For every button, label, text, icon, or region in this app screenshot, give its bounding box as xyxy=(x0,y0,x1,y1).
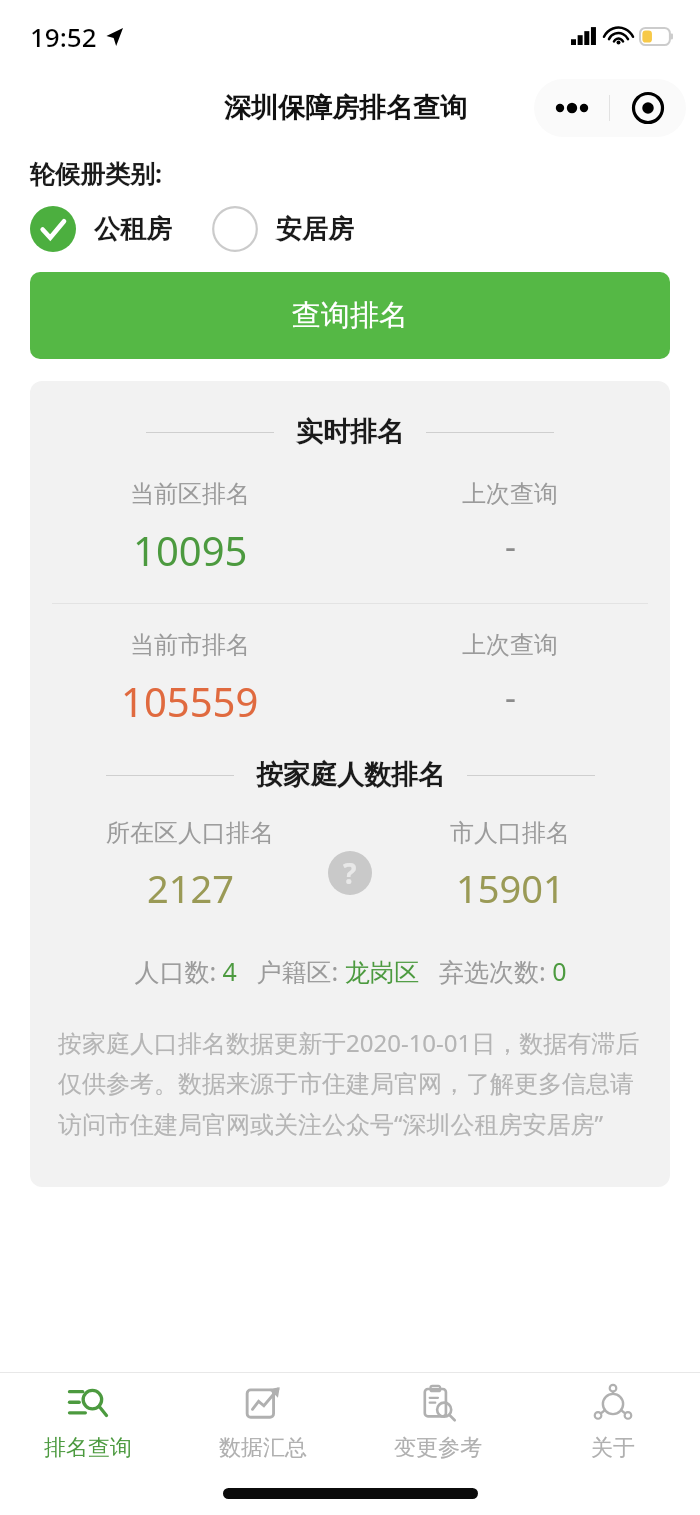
staticText: 上次查询 xyxy=(462,630,558,660)
staticText: 按家庭人口排名数据更新于2020-10-01日，数据有滞后仅供参考。数据来源于市… xyxy=(58,1026,642,1141)
staticText: 人口数: 4 户籍区: 龙岗区 弃选次数: 0 xyxy=(134,954,567,988)
staticText: 数据汇总 xyxy=(219,1434,307,1462)
staticText: 上次查询 xyxy=(462,479,558,509)
button[interactable]: Help xyxy=(328,851,372,895)
staticText: 轮候册类别: xyxy=(30,156,163,190)
staticText: 2127 xyxy=(147,862,234,914)
staticText: - xyxy=(505,523,516,569)
staticText: 排名查询 xyxy=(44,1434,132,1462)
staticText: 关于 xyxy=(591,1434,635,1462)
staticText: 10095 xyxy=(133,523,248,577)
button[interactable]: Close xyxy=(610,79,686,137)
staticText: 查询排名 xyxy=(292,297,408,334)
staticText: 当前区排名 xyxy=(130,479,250,509)
button[interactable]: 查询排名 xyxy=(30,272,670,359)
button[interactable]: 排名查询 xyxy=(0,1382,175,1462)
staticText: 15901 xyxy=(456,862,565,914)
staticText: - xyxy=(505,674,516,720)
staticText: 19:52 xyxy=(30,19,97,54)
staticText: 深圳保障房排名查询 xyxy=(224,91,467,125)
staticText: 市人口排名 xyxy=(450,818,570,848)
button[interactable]: 变更参考 xyxy=(350,1382,525,1462)
button[interactable]: 关于 xyxy=(525,1382,700,1462)
button[interactable]: 公租房 xyxy=(30,206,172,252)
staticText: ? xyxy=(343,854,357,892)
staticText: 实时排名 xyxy=(296,415,404,449)
staticText: 所在区人口排名 xyxy=(106,818,274,848)
staticText: 当前市排名 xyxy=(130,630,250,660)
staticText: 变更参考 xyxy=(394,1434,482,1462)
button[interactable]: 数据汇总 xyxy=(175,1382,350,1462)
staticText: 公租房 xyxy=(94,213,172,246)
staticText: 105559 xyxy=(121,674,259,728)
staticText: 按家庭人数排名 xyxy=(256,758,445,792)
button[interactable]: More xyxy=(534,79,609,137)
button[interactable]: 安居房 xyxy=(212,206,354,252)
staticText: 安居房 xyxy=(276,213,354,246)
